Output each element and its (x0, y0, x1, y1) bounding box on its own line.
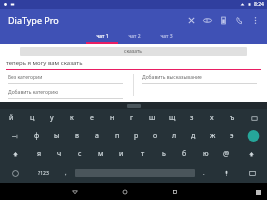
button[interactable]: э (222, 127, 241, 145)
staticText: п (115, 131, 120, 141)
staticText: ш (149, 113, 156, 123)
button[interactable]: е (82, 109, 102, 127)
staticText: щ (169, 113, 176, 123)
staticText: в (75, 131, 79, 141)
staticText: Без категории (8, 74, 43, 81)
button[interactable]: б (174, 145, 195, 163)
button[interactable]: чат 3 (150, 31, 182, 44)
button[interactable]: Voice input (213, 163, 239, 183)
button[interactable]: м (90, 145, 111, 163)
button[interactable]: д (184, 127, 203, 145)
button[interactable]: х (202, 109, 222, 127)
staticText: е (90, 113, 94, 123)
button[interactable]: р (127, 127, 146, 145)
button[interactable]: щ (162, 109, 182, 127)
staticText: л (172, 131, 177, 141)
staticText: ю (203, 149, 209, 159)
button[interactable]: Back (67, 184, 83, 200)
button[interactable]: ъ (222, 109, 242, 127)
button[interactable]: т (132, 145, 153, 163)
staticText: к (70, 113, 74, 123)
staticText: @ (223, 149, 230, 159)
staticText: чат 2 (128, 33, 141, 40)
button[interactable]: й (1, 109, 22, 127)
staticText: . (203, 169, 205, 177)
button[interactable]: н (102, 109, 122, 127)
staticText: с (78, 149, 82, 159)
button[interactable]: Добавить высказывание (142, 74, 267, 84)
button[interactable]: ы (47, 127, 67, 145)
button[interactable]: ?123 (29, 163, 57, 183)
button[interactable]: ц (22, 109, 42, 127)
button[interactable]: чат 2 (118, 31, 150, 44)
button[interactable]: о (146, 127, 165, 145)
staticText: г (130, 113, 134, 123)
staticText: о (153, 131, 158, 141)
button[interactable]: ч (49, 145, 69, 163)
staticText: д (191, 131, 196, 141)
staticText: чат 1 (96, 33, 109, 40)
button[interactable]: ь (153, 145, 174, 163)
button[interactable]: к (62, 109, 82, 127)
staticText: ь (162, 149, 166, 159)
button[interactable]: Добавить категорию (8, 89, 133, 99)
button[interactable]: ф (27, 127, 47, 145)
button[interactable]: чат 1 (86, 31, 118, 44)
button[interactable]: з (182, 109, 202, 127)
button[interactable]: Change language (2, 163, 29, 183)
staticText: э (230, 131, 234, 141)
button[interactable]: Shift (1, 145, 29, 163)
button[interactable]: у (42, 109, 62, 127)
button[interactable]: Home (117, 184, 133, 200)
staticText: 8:24 (254, 1, 264, 8)
staticText: м (98, 149, 104, 159)
staticText: я (37, 149, 42, 159)
staticText: DiaType Pro (8, 14, 59, 26)
staticText: теперь я могу вам сказать (6, 59, 83, 67)
button[interactable]: Backspace (243, 110, 265, 126)
staticText: ы (54, 131, 60, 141)
button[interactable]: Hide keyboard (239, 163, 265, 183)
button[interactable] (127, 104, 141, 108)
staticText: з (190, 113, 194, 123)
button[interactable]: Call (231, 12, 247, 28)
staticText: ъ (230, 113, 235, 123)
button[interactable]: п (107, 127, 127, 145)
staticText: т (141, 149, 145, 159)
staticText: ф (34, 131, 40, 141)
button[interactable]: Enter (243, 129, 264, 143)
staticText: сказать (124, 48, 143, 55)
button[interactable]: г (122, 109, 142, 127)
button[interactable]: Link (199, 12, 215, 28)
staticText: Добавить категорию (8, 89, 59, 96)
button[interactable]: в (67, 127, 87, 145)
button[interactable]: и (111, 145, 132, 163)
button[interactable]: @ (216, 145, 237, 163)
button[interactable]: Shift (237, 145, 266, 163)
button[interactable]: . (195, 163, 213, 183)
staticText: ж (210, 131, 216, 141)
button[interactable]: ю (195, 145, 216, 163)
staticText: а (95, 131, 99, 141)
button[interactable]: , (57, 163, 75, 183)
button[interactable]: ш (142, 109, 162, 127)
staticText: Добавить высказывание (142, 74, 202, 81)
button[interactable]: Keyboard indicator (251, 185, 265, 199)
staticText: н (110, 113, 115, 123)
staticText: ?123 (38, 170, 49, 177)
button[interactable]: Close (183, 12, 199, 28)
staticText: й (9, 113, 14, 123)
button[interactable]: я (29, 145, 49, 163)
button[interactable]: Без категории (8, 74, 133, 84)
button[interactable]: сказать (20, 47, 247, 56)
button[interactable]: с (69, 145, 90, 163)
button[interactable]: а (87, 127, 107, 145)
button[interactable]: Tab (1, 127, 27, 145)
staticText: у (50, 113, 54, 123)
button[interactable]: ж (203, 127, 222, 145)
button[interactable]: More options (247, 12, 263, 28)
button[interactable]: Device (215, 12, 231, 28)
button[interactable]: л (165, 127, 184, 145)
button[interactable]: Recents (167, 184, 183, 200)
